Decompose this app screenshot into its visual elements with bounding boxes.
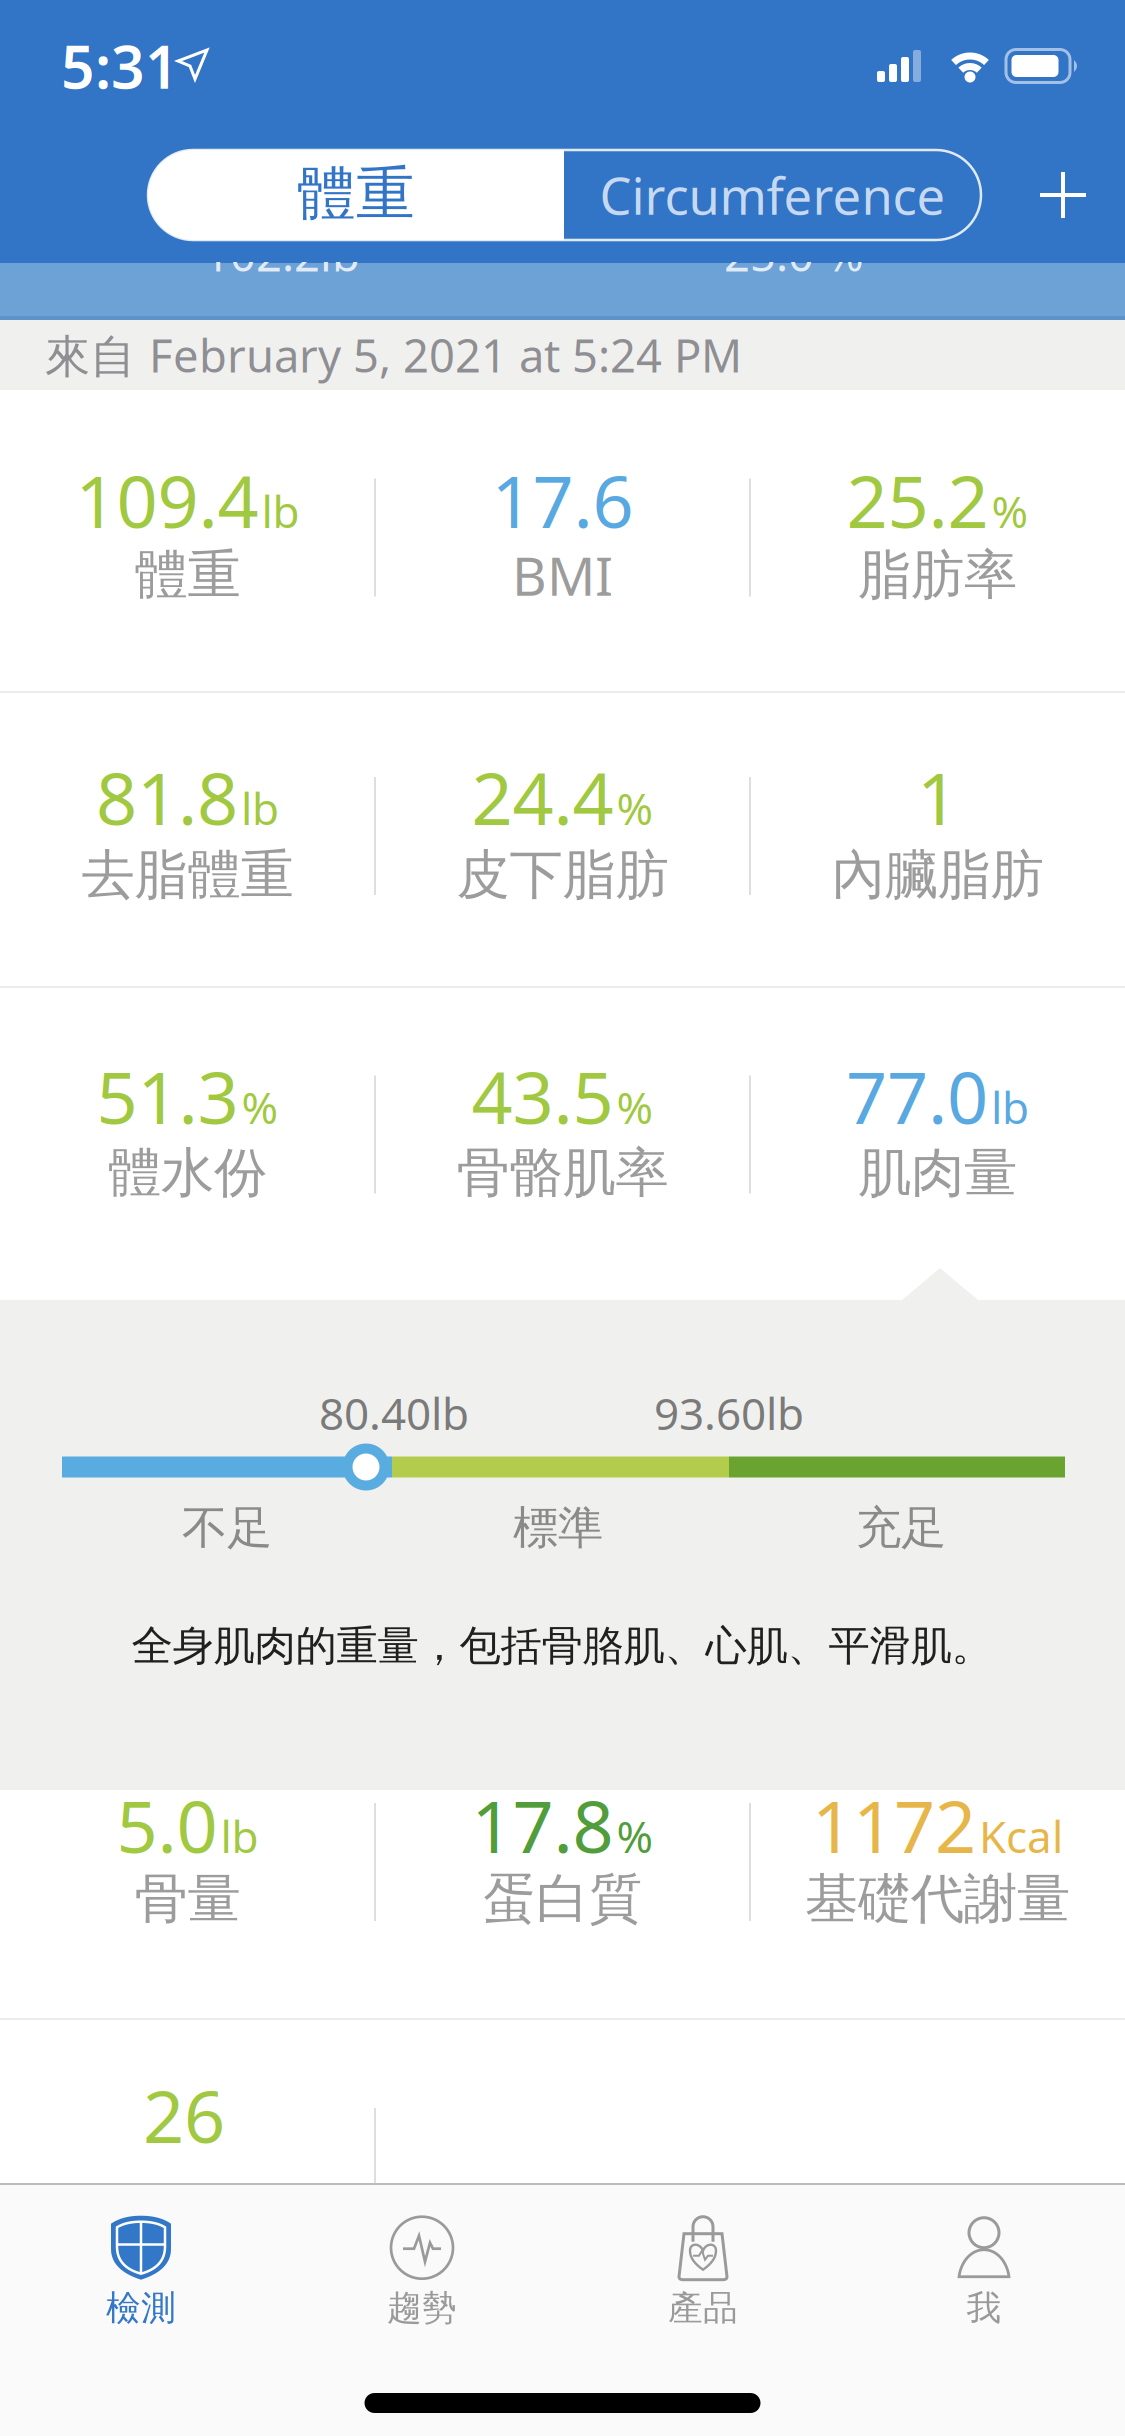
staticText: 蛋白質 (483, 1866, 642, 1932)
staticText: lb (241, 779, 279, 837)
staticText: 骨量 (134, 1866, 240, 1932)
staticText: lb (261, 482, 299, 540)
staticText: 內臟脂肪 (831, 842, 1043, 908)
button[interactable]: 25.2 (767, 437, 1107, 637)
staticText: 肌肉量 (858, 1140, 1017, 1206)
staticText: 17.8 (471, 1777, 613, 1873)
staticText: 檢測 (106, 2287, 176, 2329)
staticText: % (241, 1078, 278, 1136)
staticText: 體重 (297, 158, 415, 230)
staticText: 24.4 (471, 749, 613, 845)
staticText: Kcal (979, 1807, 1063, 1865)
staticText: 5.0 (116, 1777, 217, 1873)
staticText: 體重 (134, 542, 240, 608)
button[interactable]: 24.4 (392, 736, 732, 936)
button[interactable]: 產品 (562, 2207, 843, 2337)
staticText: 1 (917, 749, 958, 845)
staticText: 我 (966, 2287, 1001, 2329)
staticText: Circumference (599, 161, 945, 229)
staticText: 基礎代謝量 (805, 1866, 1070, 1932)
button[interactable]: 109.4 (17, 437, 357, 637)
staticText: 17.6 (491, 452, 633, 548)
staticText: 80.40lb (319, 1384, 469, 1442)
staticText: 77.0 (846, 1048, 988, 1144)
button[interactable]: 檢測 (0, 2207, 281, 2337)
staticText: 皮下脂肪 (456, 842, 668, 908)
staticText: 102.2lb (204, 224, 360, 284)
staticText: 體水份 (108, 1140, 267, 1206)
button[interactable]: 26 (143, 2067, 225, 2163)
staticText: 5:31 (61, 27, 179, 105)
staticText: 25.0 % (724, 224, 864, 284)
staticText: 標準 (513, 1500, 603, 1556)
staticText: 26 (143, 2067, 225, 2163)
staticText: BMI (512, 540, 613, 610)
button[interactable] (1033, 165, 1093, 225)
staticText: 來自 February 5, 2021 at 5:24 PM (45, 325, 742, 385)
staticText: 充足 (856, 1500, 946, 1556)
staticText: 產品 (668, 2287, 738, 2329)
staticText: 去脂體重 (81, 842, 293, 908)
button[interactable]: 趨勢 (281, 2207, 562, 2337)
staticText: % (616, 1807, 653, 1865)
staticText: 全身肌肉的重量，包括骨胳肌、心肌、平滑肌。 (131, 1621, 992, 1671)
button[interactable]: 43.5 (392, 1034, 732, 1234)
staticText: lb (991, 1078, 1029, 1136)
staticText: 109.4 (75, 452, 258, 548)
staticText: % (616, 1078, 653, 1136)
button[interactable]: Circumference (564, 150, 981, 240)
button[interactable]: 17.8 (392, 1762, 732, 1962)
staticText: 骨骼肌率 (456, 1140, 668, 1206)
button[interactable]: 51.3 (17, 1034, 357, 1234)
button[interactable]: 體重 (148, 150, 564, 240)
staticText: 51.3 (96, 1048, 238, 1144)
button[interactable]: 77.0 (767, 1034, 1107, 1234)
staticText: % (991, 482, 1028, 540)
staticText: lb (220, 1807, 258, 1865)
staticText: 不足 (182, 1500, 272, 1556)
staticText: 趨勢 (387, 2287, 457, 2329)
staticText: % (616, 779, 653, 837)
button[interactable]: 17.6 (392, 437, 732, 637)
staticText: 25.2 (846, 452, 988, 548)
staticText: 脂肪率 (858, 542, 1017, 608)
button[interactable]: 81.8 (17, 736, 357, 936)
staticText: 81.8 (96, 749, 238, 845)
button[interactable]: 我 (843, 2207, 1124, 2337)
staticText: 1172 (812, 1777, 976, 1873)
staticText: 93.60lb (654, 1384, 804, 1442)
staticText: 43.5 (471, 1048, 613, 1144)
button[interactable]: 1172 (767, 1762, 1107, 1962)
button[interactable]: 1 (767, 736, 1107, 936)
button[interactable]: 5.0 (17, 1762, 357, 1962)
